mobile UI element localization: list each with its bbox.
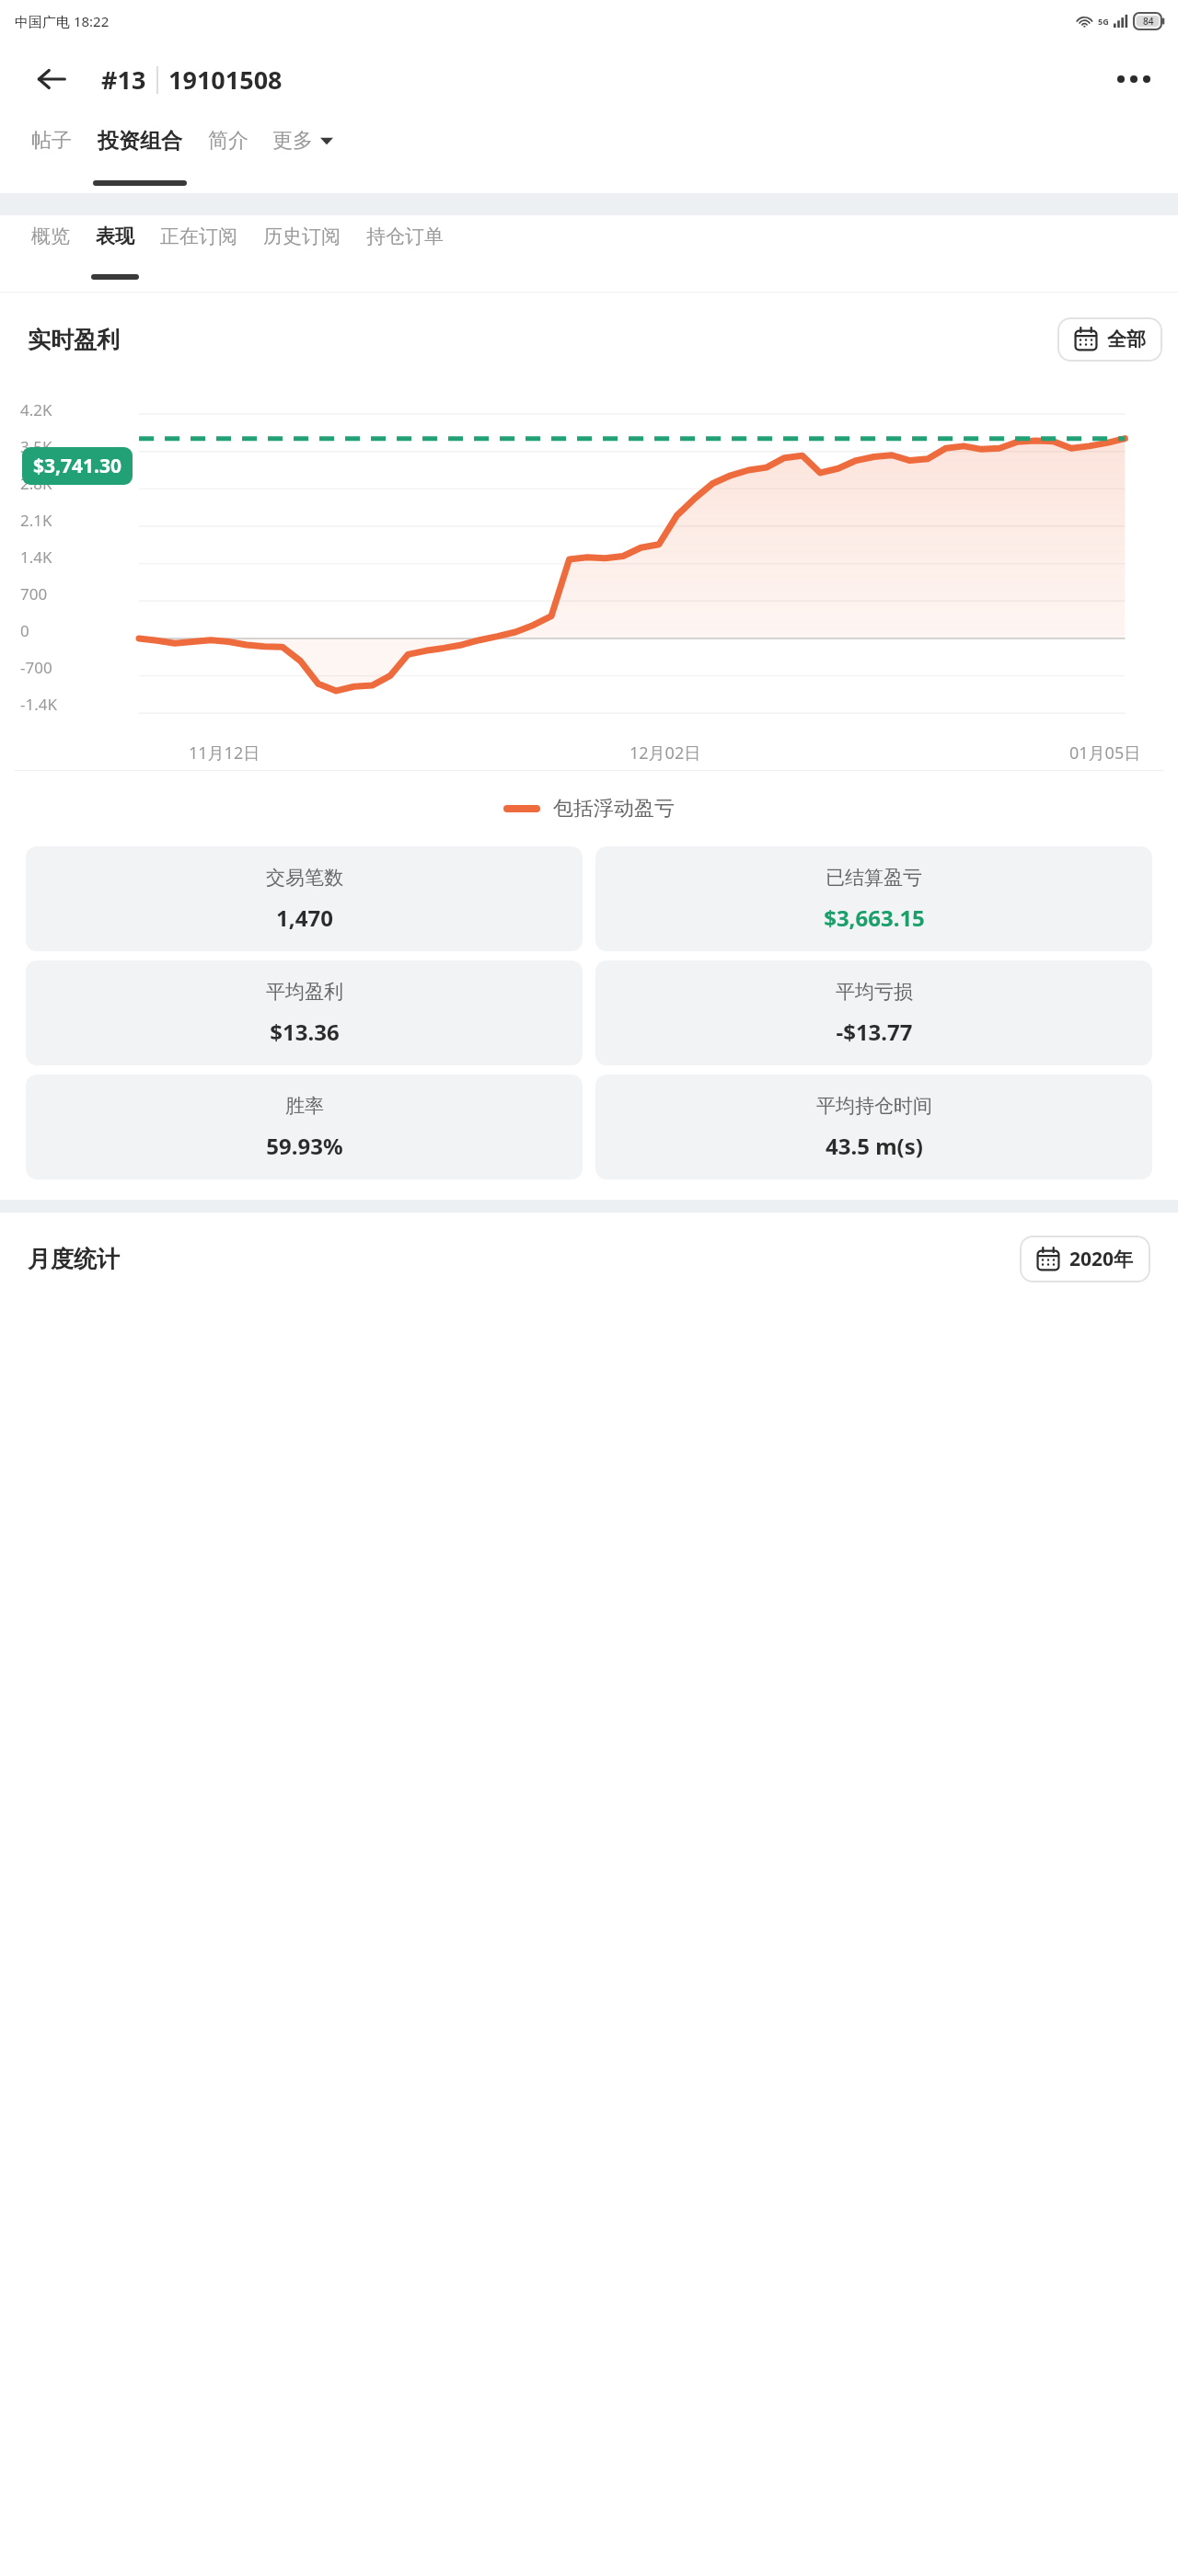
- staticText: 2.8K: [20, 473, 52, 494]
- staticText: $13.36: [270, 1017, 340, 1047]
- staticText: 月度统计: [28, 1245, 120, 1273]
- staticText: 实时盈利: [28, 326, 120, 354]
- staticText: 更多: [272, 128, 313, 154]
- staticText: 4.2K: [20, 399, 52, 420]
- staticText: 平均盈利: [266, 980, 343, 1004]
- staticText: 2020年: [1069, 1246, 1134, 1272]
- staticText: 投资组合: [98, 128, 182, 155]
- button[interactable]: 全部: [1057, 317, 1162, 362]
- staticText: 中国广电 18:22: [15, 12, 110, 30]
- button[interactable]: 表现: [83, 219, 147, 254]
- staticText: 交易笔数: [266, 866, 343, 890]
- staticText: $3,741.30: [33, 453, 121, 479]
- staticText: 01月05日: [1069, 742, 1141, 765]
- staticText: 已结算盈亏: [826, 866, 922, 890]
- button[interactable]: 胜率: [26, 1075, 583, 1179]
- button[interactable]: 帖子: [18, 122, 85, 159]
- staticText: 帖子: [31, 128, 72, 154]
- button[interactable]: 平均持仓时间: [595, 1075, 1152, 1179]
- staticText: 平均持仓时间: [816, 1094, 932, 1118]
- staticText: 11月12日: [189, 742, 260, 765]
- button[interactable]: 平均盈利: [26, 960, 583, 1065]
- button[interactable]: Back: [29, 57, 74, 101]
- staticText: 平均亏损: [836, 980, 913, 1004]
- staticText: $3,663.15: [824, 903, 925, 933]
- staticText: -700: [20, 657, 52, 678]
- staticText: 1,470: [276, 903, 333, 933]
- button[interactable]: 平均亏损: [595, 960, 1152, 1065]
- button[interactable]: 概览: [18, 219, 83, 254]
- staticText: 胜率: [285, 1094, 324, 1118]
- staticText: 84: [1143, 15, 1154, 28]
- staticText: 历史订阅: [263, 224, 341, 248]
- staticText: 持仓订单: [366, 224, 444, 248]
- staticText: 1.4K: [20, 546, 52, 568]
- button[interactable]: More options: [1110, 55, 1158, 103]
- staticText: 43.5 m(s): [826, 1131, 923, 1161]
- button[interactable]: 已结算盈亏: [595, 846, 1152, 951]
- staticText: 5G: [1098, 16, 1109, 27]
- staticText: 简介: [208, 128, 248, 154]
- button[interactable]: 更多: [261, 122, 344, 159]
- staticText: 0: [20, 620, 29, 641]
- staticText: -1.4K: [20, 694, 58, 715]
- staticText: 概览: [31, 224, 70, 248]
- staticText: 3.5K: [20, 436, 52, 457]
- staticText: 59.93%: [266, 1131, 343, 1161]
- button[interactable]: 正在订阅: [147, 219, 250, 254]
- staticText: #13: [101, 63, 146, 97]
- button[interactable]: 交易笔数: [26, 846, 583, 951]
- button[interactable]: 持仓订单: [353, 219, 456, 254]
- staticText: 19101508: [168, 63, 283, 97]
- button[interactable]: 简介: [195, 122, 261, 159]
- staticText: -$13.77: [836, 1017, 913, 1047]
- staticText: 表现: [96, 224, 134, 248]
- staticText: 700: [20, 583, 48, 604]
- staticText: 正在订阅: [160, 224, 237, 248]
- button[interactable]: 投资组合: [85, 122, 195, 160]
- staticText: 12月02日: [629, 742, 701, 765]
- staticText: 2.1K: [20, 510, 52, 531]
- staticText: 包括浮动盈亏: [553, 796, 675, 822]
- button[interactable]: 历史订阅: [250, 219, 353, 254]
- staticText: 全部: [1107, 328, 1146, 351]
- button[interactable]: 2020年: [1020, 1236, 1150, 1282]
